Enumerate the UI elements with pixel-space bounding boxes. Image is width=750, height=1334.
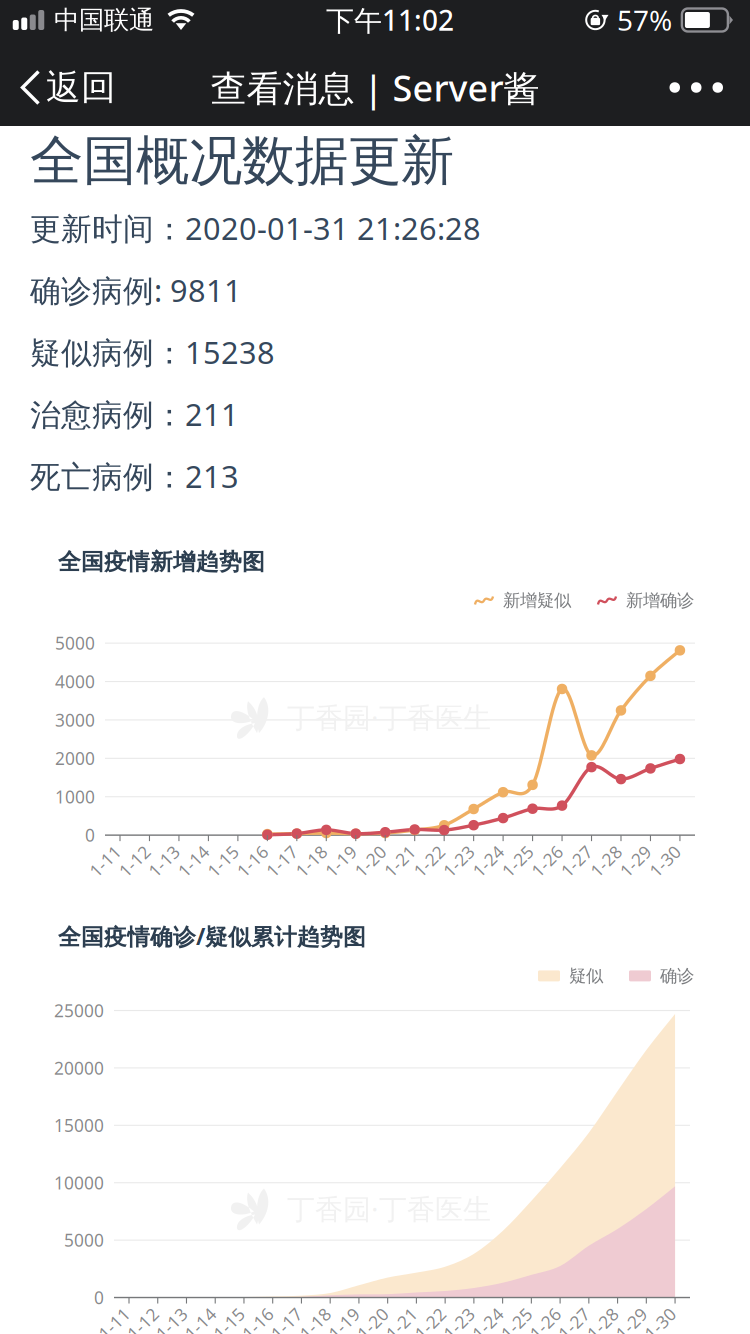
staticText: 1-18 xyxy=(297,1312,333,1334)
staticText: 1-27 xyxy=(558,850,594,873)
staticText: 确诊病例: 9811 xyxy=(30,270,242,310)
staticText: 治愈病例：211 xyxy=(30,394,239,434)
staticText: 5000 xyxy=(64,1229,104,1252)
staticText: 1-12 xyxy=(125,1312,161,1334)
staticText: 1-14 xyxy=(175,850,211,873)
button[interactable]: 返回 xyxy=(20,52,132,123)
staticText: 1-25 xyxy=(500,850,536,873)
staticText: 疑似病例：15238 xyxy=(30,332,275,372)
staticText: 丁香园·丁香医生 xyxy=(287,1190,491,1227)
staticText: 1-16 xyxy=(240,1312,276,1334)
staticText: 1-14 xyxy=(182,1312,218,1334)
staticText: 新增疑似 xyxy=(503,590,571,611)
staticText: 1-20 xyxy=(355,1312,391,1334)
staticText: 25000 xyxy=(54,999,104,1022)
staticText: 1-21 xyxy=(383,1312,419,1334)
staticText: 疑似 xyxy=(569,965,603,986)
staticText: 5000 xyxy=(55,632,95,655)
staticText: 57% xyxy=(617,1,672,39)
staticText: 死亡病例：213 xyxy=(30,456,239,496)
staticText: 1-13 xyxy=(153,1312,189,1334)
staticText: 1-30 xyxy=(647,850,683,873)
staticText: 1-15 xyxy=(211,1312,247,1334)
staticText: 1-23 xyxy=(441,850,477,873)
staticText: 0 xyxy=(85,824,95,847)
staticText: 1-22 xyxy=(411,850,447,873)
staticText: 4000 xyxy=(55,670,95,693)
staticText: 丁香园·丁香医生 xyxy=(287,698,491,736)
staticText: 1-29 xyxy=(617,850,653,873)
staticText: 1-26 xyxy=(529,850,565,873)
staticText: 2000 xyxy=(55,747,95,770)
staticText: 1-24 xyxy=(470,1312,506,1334)
staticText: 1-22 xyxy=(412,1312,448,1334)
staticText: 中国联通 xyxy=(54,4,154,35)
staticText: 全国疫情新增趋势图 xyxy=(58,548,265,576)
button[interactable]: More options xyxy=(645,60,724,115)
staticText: 1-15 xyxy=(205,850,241,873)
staticText: 0 xyxy=(94,1286,104,1309)
staticText: 确诊 xyxy=(660,965,694,986)
staticText: 1-12 xyxy=(116,850,152,873)
staticText: 1-20 xyxy=(352,850,388,873)
staticText: 1-28 xyxy=(588,850,624,873)
staticText: 3000 xyxy=(55,708,95,731)
staticText: 1-11 xyxy=(87,850,123,873)
staticText: 1-28 xyxy=(585,1312,621,1334)
staticText: 1-19 xyxy=(326,1312,362,1334)
staticText: 1-17 xyxy=(268,1312,304,1334)
staticText: 新增确诊 xyxy=(626,590,694,611)
staticText: 1-17 xyxy=(264,850,300,873)
staticText: 下午11:02 xyxy=(326,1,454,39)
staticText: 10000 xyxy=(54,1171,104,1194)
staticText: 1-11 xyxy=(96,1312,132,1334)
staticText: 20000 xyxy=(54,1056,104,1079)
staticText: 返回 xyxy=(46,66,116,109)
staticText: 更新时间：2020-01-31 21:26:28 xyxy=(30,208,481,248)
staticText: 1-24 xyxy=(470,850,506,873)
staticText: 查看消息 | Server酱 xyxy=(210,64,539,111)
staticText: 1-23 xyxy=(441,1312,477,1334)
staticText: 全国疫情确诊/疑似累计趋势图 xyxy=(58,921,366,951)
staticText: 1-29 xyxy=(613,1312,649,1334)
staticText: 1-27 xyxy=(556,1312,592,1334)
staticText: 1-18 xyxy=(293,850,329,873)
staticText: 1-19 xyxy=(323,850,359,873)
staticText: 1-26 xyxy=(527,1312,563,1334)
staticText: 1-30 xyxy=(642,1312,678,1334)
staticText: 全国概况数据更新 xyxy=(30,128,454,194)
staticText: 1-13 xyxy=(146,850,182,873)
staticText: 1-21 xyxy=(382,850,418,873)
staticText: 1-16 xyxy=(234,850,270,873)
staticText: 1000 xyxy=(55,785,95,808)
staticText: 1-25 xyxy=(498,1312,534,1334)
staticText: 15000 xyxy=(54,1114,104,1137)
